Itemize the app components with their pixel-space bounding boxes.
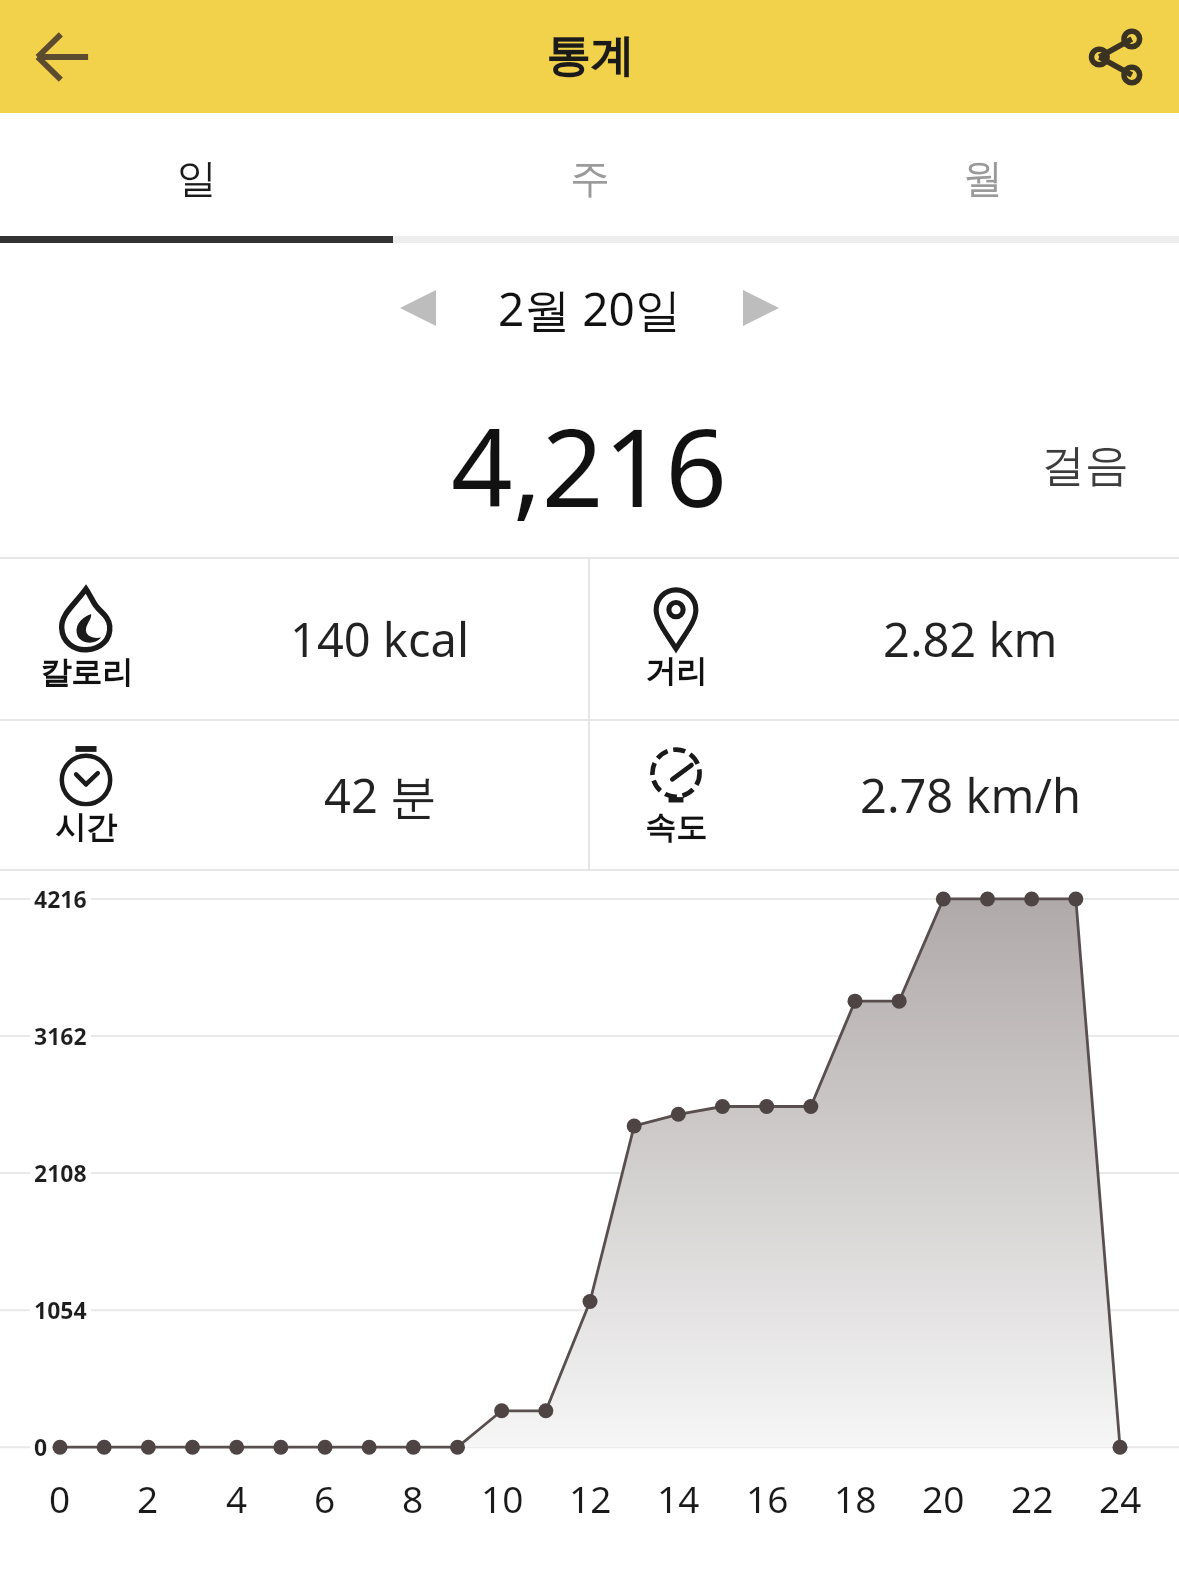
staticText: 10 <box>481 1473 524 1523</box>
staticText: 18 <box>834 1473 877 1523</box>
staticText: 2 <box>137 1473 159 1523</box>
staticText: 칼로리 <box>40 653 133 692</box>
staticText: 8 <box>402 1473 424 1523</box>
staticText: 0 <box>49 1473 71 1523</box>
staticText: 2.78 km/h <box>860 763 1082 827</box>
staticText: 4 <box>226 1473 248 1523</box>
staticText: 일 <box>177 153 217 203</box>
staticText: 4,216 <box>451 392 728 539</box>
staticText: 월 <box>963 153 1003 203</box>
staticText: 22 <box>1011 1473 1054 1523</box>
staticText: 시간 <box>55 808 117 847</box>
button[interactable]: 칼로리 <box>0 559 588 719</box>
staticText: 14 <box>657 1473 700 1523</box>
staticText: 20 <box>922 1473 965 1523</box>
staticText: 2월 20일 <box>498 277 681 340</box>
staticText: 걸음 <box>1041 438 1129 493</box>
staticText: 12 <box>569 1473 612 1523</box>
staticText: 0 <box>34 1431 48 1462</box>
staticText: 42 분 <box>324 763 437 827</box>
staticText: 24 <box>1099 1473 1142 1523</box>
staticText: 속도 <box>645 808 707 847</box>
button[interactable]: Previous day <box>376 266 460 350</box>
button[interactable]: 일 <box>0 113 393 243</box>
staticText: 16 <box>746 1473 789 1523</box>
staticText: 6 <box>314 1473 336 1523</box>
button[interactable]: 거리 <box>590 559 1179 719</box>
staticText: 주 <box>570 153 610 203</box>
button[interactable]: 주 <box>393 113 786 243</box>
staticText: 3162 <box>34 1020 87 1051</box>
button[interactable]: Back <box>12 7 112 107</box>
button[interactable]: Next day <box>719 266 803 350</box>
button[interactable]: Share <box>1065 7 1165 107</box>
button[interactable]: 월 <box>786 113 1179 243</box>
button[interactable]: 속도 <box>590 721 1179 869</box>
button[interactable]: 시간 <box>0 721 588 869</box>
staticText: 1054 <box>34 1294 87 1325</box>
staticText: 2.82 km <box>883 607 1058 671</box>
staticText: 통계 <box>546 29 634 84</box>
staticText: 140 kcal <box>290 607 470 671</box>
staticText: 2108 <box>34 1157 87 1188</box>
staticText: 4216 <box>34 883 87 914</box>
staticText: 거리 <box>645 652 707 691</box>
